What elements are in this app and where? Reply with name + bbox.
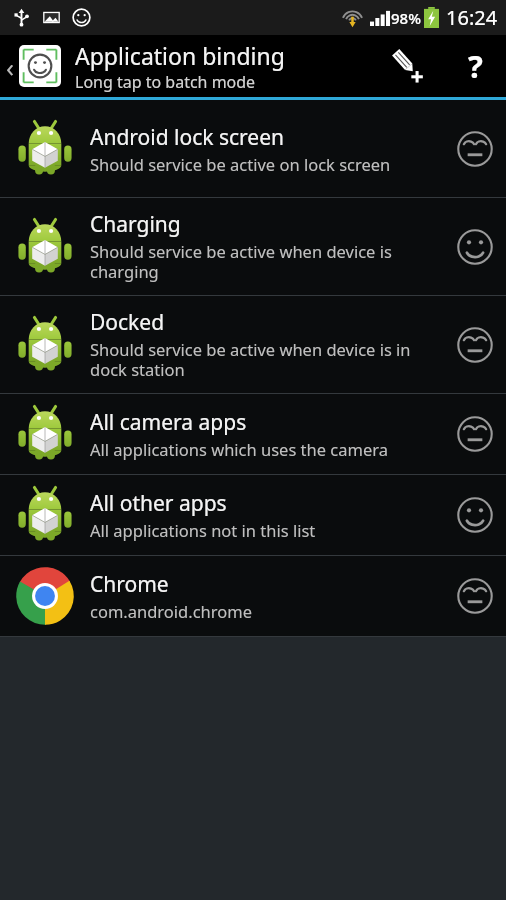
button[interactable]: Help [444, 35, 506, 97]
staticText: com.android.chrome [90, 600, 252, 622]
staticText: ? [468, 45, 483, 87]
button[interactable]: Android lock screen [0, 100, 506, 197]
button[interactable]: All other apps [0, 475, 506, 555]
staticText: Long tap to batch mode [75, 71, 256, 93]
staticText: ‹ [6, 49, 15, 84]
button[interactable]: Add entry [370, 35, 444, 97]
staticText: Docked [90, 308, 165, 337]
button[interactable]: Charging [0, 198, 506, 295]
staticText: Application binding [75, 40, 285, 71]
button[interactable]: Chrome [0, 556, 506, 636]
button[interactable]: Back [0, 35, 67, 97]
button[interactable]: Docked [0, 296, 506, 393]
staticText: All applications which uses the camera [90, 438, 389, 460]
staticText: All camera apps [90, 408, 247, 437]
staticText: All other apps [90, 489, 227, 518]
button[interactable]: All camera apps [0, 394, 506, 474]
staticText: 16:24 [446, 4, 498, 31]
staticText: Should service be active when device is … [90, 338, 438, 381]
staticText: Chrome [90, 570, 169, 599]
staticText: Android lock screen [90, 123, 284, 152]
staticText: Should service be active on lock screen [90, 153, 391, 175]
staticText: Charging [90, 210, 181, 239]
staticText: 98% [391, 8, 421, 28]
staticText: Should service be active when device is … [90, 240, 438, 283]
staticText: All applications not in this list [90, 519, 316, 541]
